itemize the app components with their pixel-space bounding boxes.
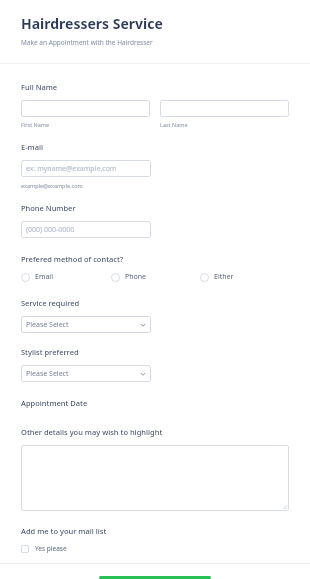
staticText: First Name — [21, 121, 50, 128]
staticText: Phone Number — [21, 203, 76, 213]
button[interactable]: Email — [21, 272, 111, 282]
staticText: Add me to your mail list — [21, 526, 107, 536]
staticText: Hairdressers Service — [21, 14, 163, 33]
staticText: example@example.com — [21, 182, 83, 189]
staticText: Phone — [125, 272, 147, 282]
staticText: Yes please — [35, 544, 67, 553]
staticText: E-mail — [21, 142, 44, 152]
button[interactable]: ex: myname@example.com — [21, 160, 151, 177]
staticText: ex: myname@example.com — [26, 164, 117, 174]
button[interactable] — [160, 100, 289, 117]
staticText: Prefered method of contact? — [21, 254, 124, 264]
staticText: Full Name — [21, 82, 58, 92]
staticText: Please Select — [26, 320, 69, 330]
staticText: Either — [214, 272, 234, 282]
button[interactable]: (000) 000-0000 — [21, 221, 151, 238]
staticText: Other details you may wish to highlight — [21, 427, 163, 437]
button[interactable]: Phone — [111, 272, 200, 282]
button[interactable]: Yes please — [21, 544, 67, 553]
button[interactable]: Request an Appointment — [99, 576, 211, 579]
staticText: Make an Appointment with the Hairdresser — [21, 38, 153, 47]
staticText: Appointment Date — [21, 398, 88, 408]
staticText: Email — [35, 272, 53, 282]
staticText: Service required — [21, 298, 80, 308]
staticText: (000) 000-0000 — [26, 225, 75, 235]
button[interactable]: Please Select — [21, 316, 151, 333]
staticText: Last Name — [160, 121, 188, 128]
button[interactable] — [21, 445, 289, 511]
staticText: Stylist preferred — [21, 347, 79, 357]
button[interactable]: Please Select — [21, 365, 151, 382]
button[interactable] — [21, 100, 150, 117]
staticText: Please Select — [26, 369, 69, 379]
button[interactable]: Either — [200, 272, 289, 282]
